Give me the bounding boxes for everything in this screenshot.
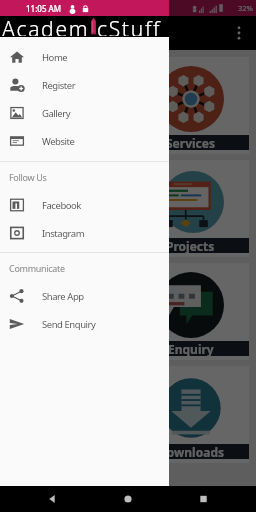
button[interactable]: Facebook — [0, 191, 169, 219]
staticText: Enquiry — [168, 341, 214, 356]
button[interactable]: Enquiry — [7, 263, 124, 360]
staticText: Website — [42, 135, 75, 148]
button[interactable]: Projects — [132, 160, 249, 257]
button[interactable]: Projects — [7, 160, 124, 257]
staticText: Communicate — [9, 262, 65, 274]
staticText: 11:05 AM — [26, 3, 62, 14]
button[interactable]: Share App — [0, 282, 169, 310]
staticText: Instagram — [42, 227, 85, 240]
staticText: Services — [166, 135, 215, 150]
staticText: Services — [41, 135, 90, 150]
staticText: cStuff — [97, 15, 162, 36]
button[interactable]: Downloads — [132, 366, 249, 463]
staticText: Projects — [166, 238, 215, 253]
button[interactable]: Services — [132, 57, 249, 154]
button[interactable]: Send Enquiry — [0, 310, 169, 338]
button[interactable]: Instagram — [0, 219, 169, 247]
staticText: Projects — [41, 238, 90, 253]
staticText: Follow Us — [9, 171, 47, 183]
staticText: Gallery — [42, 107, 71, 120]
button[interactable]: Home — [0, 43, 169, 71]
staticText: Register — [42, 79, 76, 92]
staticText: Facebook — [42, 199, 81, 212]
button[interactable]: More options — [222, 16, 256, 50]
button[interactable]: Website — [0, 127, 169, 155]
staticText: Home — [42, 51, 68, 64]
staticText: Downloads — [158, 444, 224, 459]
staticText: Academ — [2, 15, 90, 36]
button[interactable]: Services — [7, 57, 124, 154]
staticText: Send Enquiry — [42, 318, 96, 331]
staticText: 32% — [238, 3, 253, 13]
staticText: Share App — [42, 290, 84, 303]
button[interactable]: Register — [0, 71, 169, 99]
button[interactable]: Gallery — [0, 99, 169, 127]
button[interactable]: Enquiry — [132, 263, 249, 360]
